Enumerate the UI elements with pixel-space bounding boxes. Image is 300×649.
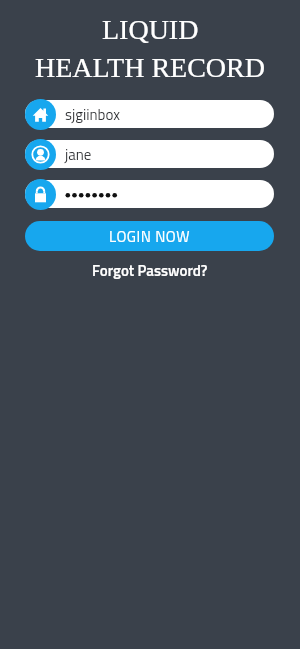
staticText: jane	[65, 143, 92, 166]
button[interactable]: jane	[25, 140, 274, 168]
button[interactable]: LOGIN NOW	[25, 221, 274, 251]
button[interactable]: sjgiinbox	[25, 100, 274, 128]
staticText: HEALTH RECORD	[35, 52, 265, 83]
button[interactable]: Forgot Password?	[92, 259, 208, 282]
staticText: sjgiinbox	[65, 103, 121, 126]
staticText: LIQUID	[102, 14, 199, 45]
staticText: LOGIN NOW	[109, 225, 190, 248]
button[interactable]	[25, 180, 274, 208]
